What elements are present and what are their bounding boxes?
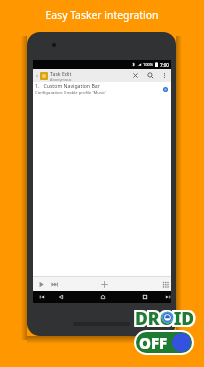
staticText: 1. Custom Navigation Bar (35, 82, 100, 89)
button[interactable]: Grid view (160, 277, 171, 291)
button[interactable]: More options (160, 69, 169, 82)
button[interactable]: Next track (49, 277, 60, 291)
button[interactable]: Close (130, 69, 141, 82)
staticText: OFF (139, 333, 168, 353)
button[interactable]: Recents (140, 291, 150, 303)
button[interactable]: Search (145, 69, 156, 82)
staticText: Easy Tasker integration (0, 8, 204, 22)
button[interactable]: Back (33, 69, 40, 82)
button[interactable]: Home (98, 291, 108, 303)
button[interactable]: 1. Custom Navigation Bar (33, 82, 171, 96)
staticText: 7:00 (160, 62, 169, 68)
button[interactable]: Next track (163, 291, 173, 303)
staticText: Task Edit (50, 70, 72, 77)
staticText: DROID (135, 306, 195, 330)
staticText: Anonymous (50, 77, 72, 82)
button[interactable]: Add (99, 277, 110, 291)
button[interactable]: Back (56, 291, 66, 303)
staticText: 100% (143, 62, 154, 67)
button[interactable]: Play (36, 277, 47, 291)
staticText: Configuration: Enable profile 'Music' (35, 90, 107, 96)
button[interactable]: Previous track (37, 291, 47, 303)
staticText: DROID (135, 306, 195, 330)
